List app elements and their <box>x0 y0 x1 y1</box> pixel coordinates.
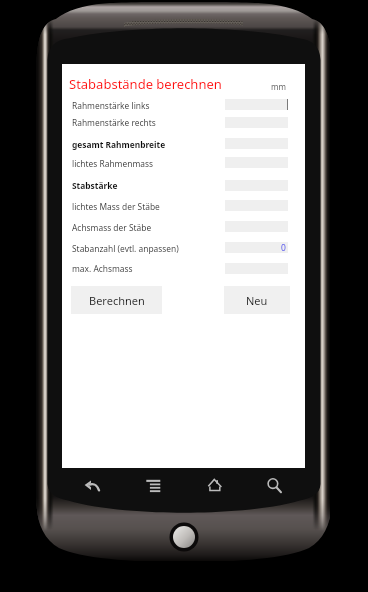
staticText: Neu <box>246 293 268 308</box>
button[interactable]: Search <box>258 470 289 501</box>
button[interactable]: Back <box>77 470 108 501</box>
staticText: max. Achsmass <box>72 263 133 274</box>
button[interactable]: Home <box>204 470 235 501</box>
staticText: gesamt Rahmenbreite <box>72 139 166 150</box>
staticText: Berechnen <box>89 293 145 308</box>
staticText: 0 <box>281 242 286 253</box>
staticText: Rahmenstärke rechts <box>72 117 156 128</box>
staticText: lichtes Mass der Stäbe <box>72 201 160 212</box>
staticText: Stababstände berechnen <box>69 75 222 93</box>
staticText: Rahmenstärke links <box>72 100 150 111</box>
staticText: mm <box>271 81 286 92</box>
button[interactable]: Menu <box>140 470 171 501</box>
button[interactable] <box>225 99 288 110</box>
button[interactable]: Berechnen <box>71 286 162 314</box>
staticText: Stabanzahl (evtl. anpassen) <box>72 243 179 254</box>
staticText: Achsmass der Stäbe <box>72 222 152 233</box>
staticText: lichtes Rahmenmass <box>72 158 153 169</box>
button[interactable]: Neu <box>224 286 290 314</box>
staticText: Stabstärke <box>72 180 118 191</box>
button[interactable]: 0 <box>225 242 288 253</box>
